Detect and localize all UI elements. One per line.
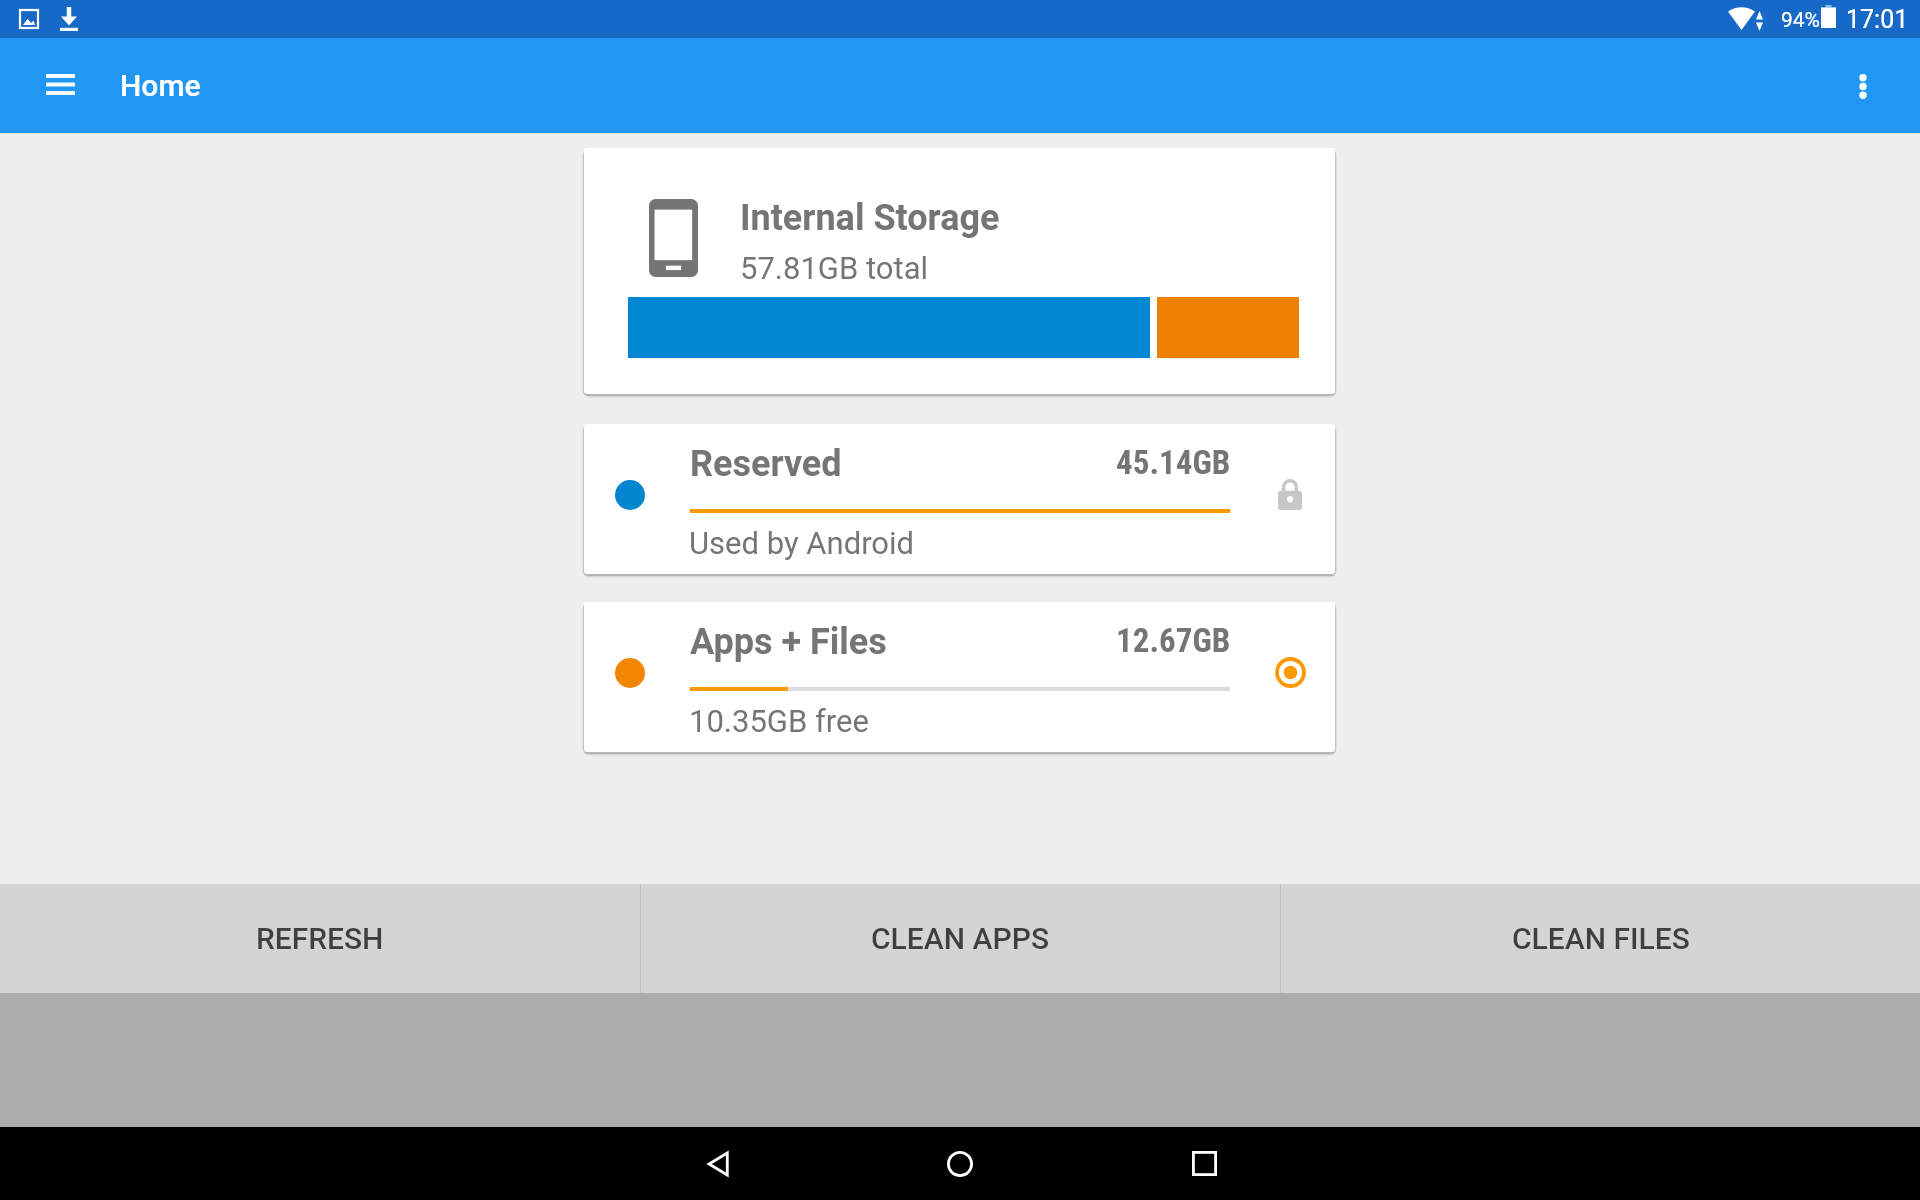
button[interactable]: More options xyxy=(1833,56,1893,116)
button[interactable]: Apps + Files xyxy=(584,602,1335,752)
staticText: 17:01 xyxy=(1846,5,1909,34)
button[interactable]: Select Apps and Files xyxy=(1270,652,1310,692)
button[interactable]: Home xyxy=(912,1127,1008,1200)
button[interactable]: CLEAN FILES xyxy=(1281,884,1920,993)
staticText: 94% xyxy=(1781,8,1820,33)
staticText: 57.81GB total xyxy=(740,250,929,286)
staticText: CLEAN APPS xyxy=(871,921,1050,956)
button[interactable]: REFRESH xyxy=(0,884,640,993)
staticText: 45.14GB xyxy=(1116,443,1231,482)
staticText: 12.67GB xyxy=(1116,621,1231,660)
staticText: CLEAN FILES xyxy=(1512,921,1690,956)
button[interactable]: Locked by system xyxy=(1270,474,1310,514)
button[interactable]: Open navigation drawer xyxy=(30,54,90,114)
button[interactable]: Internal Storage xyxy=(584,148,1335,394)
staticText: Home xyxy=(120,68,201,103)
staticText: Reserved xyxy=(690,443,842,485)
button[interactable]: Back xyxy=(672,1127,768,1200)
button[interactable]: CLEAN APPS xyxy=(641,884,1280,993)
button[interactable]: Reserved xyxy=(584,424,1335,574)
staticText: Apps + Files xyxy=(690,621,887,663)
button[interactable]: Recent apps xyxy=(1156,1127,1252,1200)
staticText: REFRESH xyxy=(256,921,384,956)
staticText: 10.35GB free xyxy=(689,703,869,739)
staticText: Internal Storage xyxy=(740,197,1000,239)
staticText: Used by Android xyxy=(689,525,915,561)
